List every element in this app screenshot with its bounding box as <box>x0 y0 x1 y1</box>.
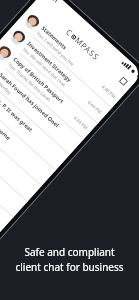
staticText: Safe and compliant <box>24 245 115 259</box>
staticText: MPASS <box>73 34 102 63</box>
staticText: Hi Sarah, welcome <box>0 102 13 141</box>
button[interactable]: Statements <box>16 7 126 108</box>
staticText: Yesterday <box>0 77 13 95</box>
staticText: You: Thanks for this Sarah <box>7 61 52 103</box>
staticText: 9:41 <box>47 0 59 5</box>
button[interactable]: Welcome to Compass <box>0 116 27 217</box>
staticText: Thanks, P. It was great <box>0 87 35 133</box>
button[interactable]: New message <box>119 76 133 90</box>
button[interactable]: Thanks, P. It was great <box>0 69 69 170</box>
button[interactable]: Investment Strategy <box>2 22 112 123</box>
button[interactable]: Documents <box>0 131 13 233</box>
staticText: Copy of British Passport <box>12 55 66 105</box>
staticText: 4:44 PM <box>87 99 103 115</box>
staticText: 04/04/2019 <box>0 93 1 113</box>
staticText: You: We will send this chat <box>21 46 67 88</box>
button[interactable]: Onboarding <box>0 100 41 201</box>
button[interactable]: Sarah Found has joined Onel <box>0 53 83 155</box>
staticText: C <box>64 26 76 39</box>
staticText: You: I will send you the <box>36 30 76 67</box>
staticText: 4:48 PM <box>101 83 117 99</box>
button[interactable]: Copy of British Passport <box>0 38 97 139</box>
staticText: Statements <box>40 24 69 51</box>
staticText: 4:44 PM <box>72 115 89 130</box>
button[interactable]: Hi Sarah, welcome <box>0 85 55 186</box>
staticText: Sarah Found has joined Onel <box>0 71 61 128</box>
staticText: client chat for business <box>15 260 124 274</box>
staticText: Investment Strategy <box>26 40 73 83</box>
